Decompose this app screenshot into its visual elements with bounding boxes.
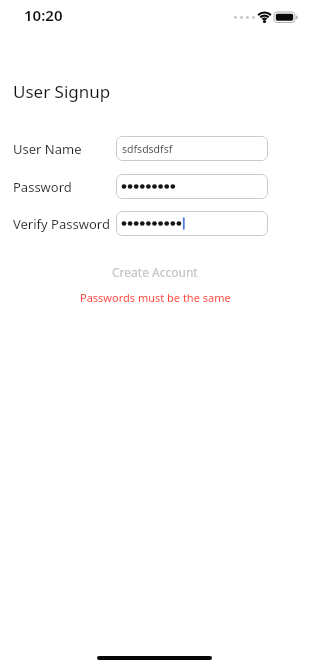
staticText: Password xyxy=(13,178,72,196)
staticText: 10:20 xyxy=(24,5,63,25)
staticText: Passwords must be the same xyxy=(80,290,231,305)
staticText: User Name xyxy=(13,140,82,158)
button[interactable]: sdfsdsdfsf xyxy=(116,136,268,161)
staticText: User Signup xyxy=(13,80,111,103)
button[interactable]: Create Account xyxy=(112,264,198,280)
button[interactable] xyxy=(116,211,268,236)
button[interactable] xyxy=(116,174,268,199)
staticText: Verify Password xyxy=(13,215,110,233)
staticText: sdfsdsdfsf xyxy=(122,142,173,156)
staticText: Create Account xyxy=(112,264,198,280)
